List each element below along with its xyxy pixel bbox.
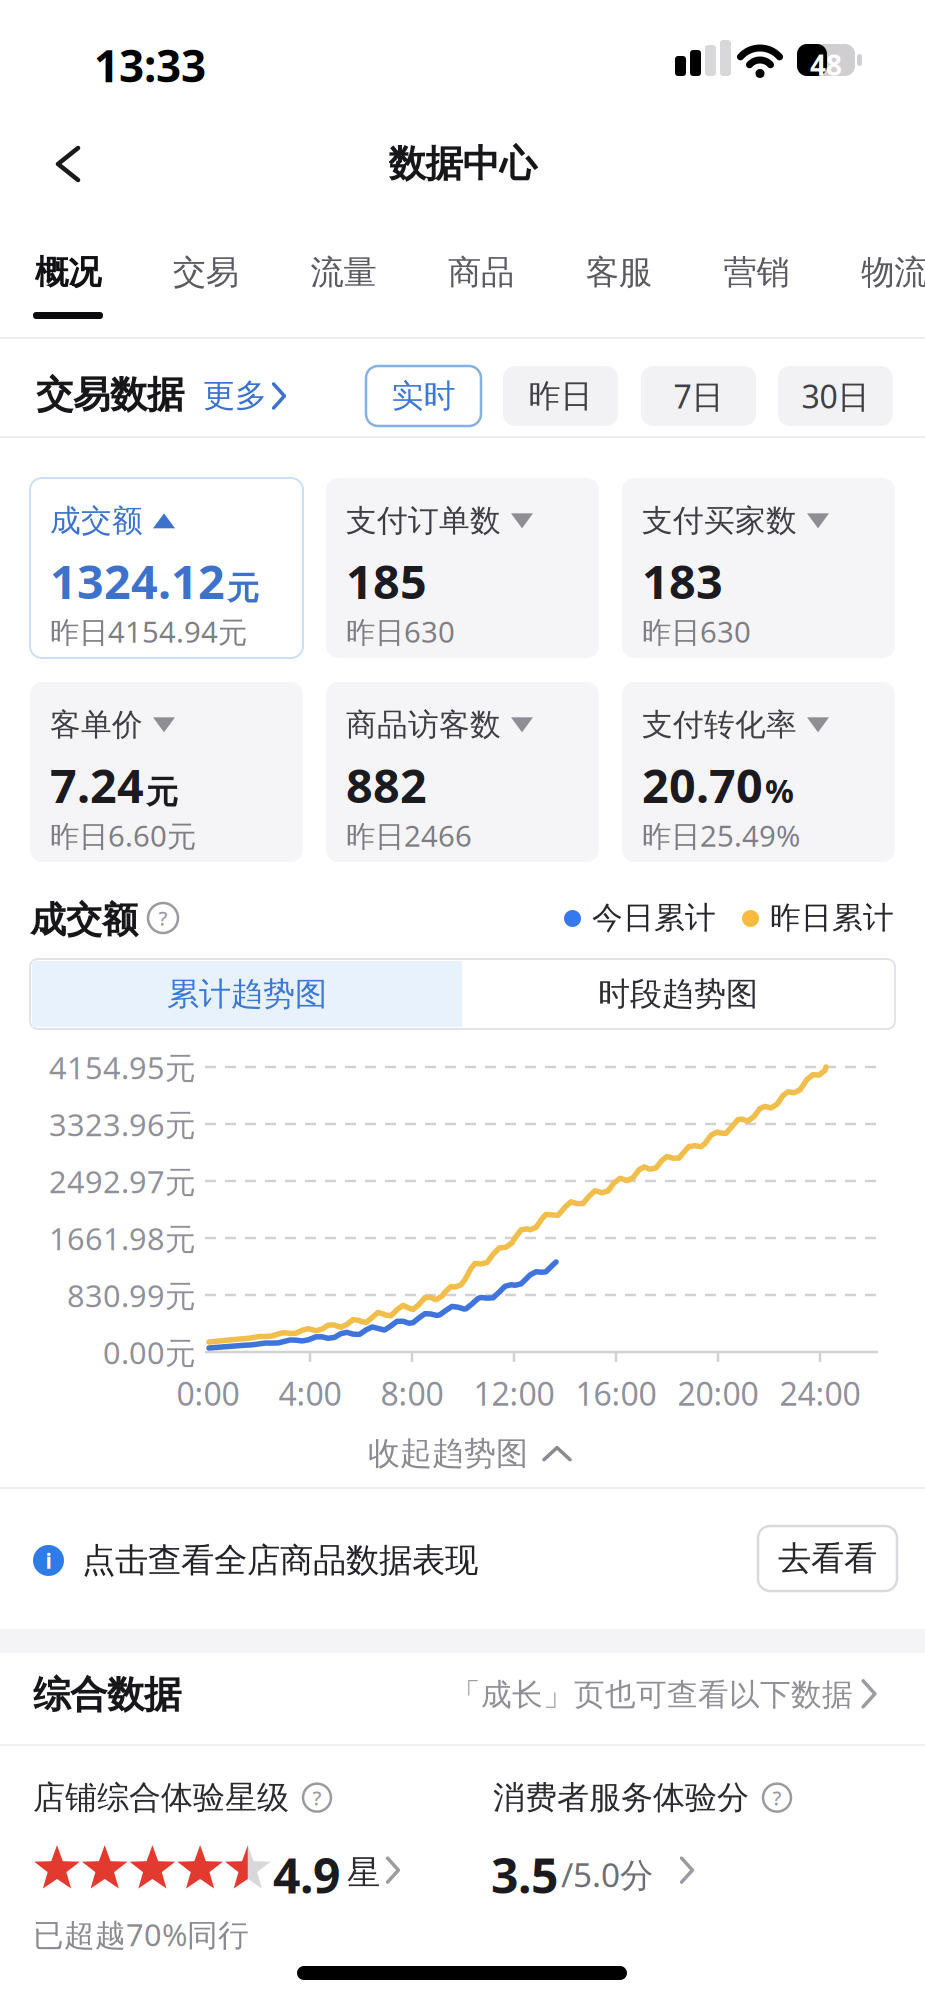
staticText: 4:00	[278, 1372, 341, 1414]
staticText: 12:00	[473, 1372, 554, 1414]
button[interactable]: 7日	[641, 366, 756, 426]
button[interactable]: 更多	[203, 376, 293, 416]
button[interactable]: i	[33, 1540, 478, 1581]
button[interactable]: 流量	[274, 252, 412, 293]
staticText: 物流	[861, 252, 925, 293]
staticText: 客服	[586, 252, 652, 293]
staticText: 点击查看全店商品数据表现	[82, 1540, 478, 1581]
button[interactable]: 收起趋势图	[368, 1434, 572, 1473]
button[interactable]: 累计趋势图	[32, 961, 462, 1027]
staticText: 1324.12	[50, 550, 225, 612]
staticText: 185	[346, 550, 427, 612]
staticText: 昨日25.49%	[642, 816, 800, 855]
button[interactable]: 时段趋势图	[463, 961, 893, 1027]
staticText: 成交额	[30, 898, 138, 942]
staticText: 更多	[203, 376, 267, 415]
staticText: %	[765, 769, 794, 812]
staticText: 昨日4154.94元	[50, 612, 247, 651]
staticText: 昨日6.60元	[50, 816, 196, 855]
button[interactable]: 去看看	[758, 1526, 897, 1591]
button[interactable]: 帮助	[763, 1784, 791, 1812]
staticText: 183	[642, 550, 723, 612]
staticText: 0.00元	[103, 1332, 196, 1373]
staticText: 30日	[801, 375, 869, 417]
button[interactable]: 4.9	[33, 1841, 443, 1901]
staticText: 1661.98元	[49, 1218, 196, 1259]
staticText: ?	[158, 905, 167, 931]
staticText: 16:00	[575, 1372, 656, 1414]
button[interactable]: 支付订单数	[326, 478, 599, 658]
button[interactable]: 3.5	[491, 1841, 701, 1901]
button[interactable]: 「成长」页也可查看以下数据	[450, 1676, 879, 1714]
staticText: 昨日630	[346, 612, 455, 651]
staticText: 已超越70%同行	[33, 1914, 249, 1955]
staticText: /5.0分	[561, 1852, 653, 1896]
button[interactable]: 支付转化率	[622, 682, 895, 862]
staticText: 13:33	[94, 36, 206, 94]
staticText: 882	[346, 754, 427, 816]
button[interactable]: 成交额	[30, 478, 303, 658]
button[interactable]: 返回	[56, 146, 82, 182]
staticText: 支付买家数	[642, 502, 797, 540]
staticText: 24:00	[779, 1372, 860, 1414]
staticText: i	[45, 1546, 51, 1575]
staticText: 48	[810, 46, 842, 83]
staticText: 830.99元	[67, 1275, 196, 1316]
staticText: 2492.97元	[49, 1161, 196, 1202]
button[interactable]: 商品访客数	[326, 682, 599, 862]
staticText: 星	[347, 1852, 380, 1893]
staticText: ?	[312, 1784, 321, 1811]
button[interactable]: 支付买家数	[622, 478, 895, 658]
staticText: 客单价	[50, 706, 143, 744]
staticText: 昨日630	[642, 612, 751, 651]
button[interactable]: 帮助	[148, 903, 178, 933]
staticText: 7.24	[50, 754, 144, 816]
staticText: 消费者服务体验分	[493, 1778, 749, 1817]
staticText: 昨日	[528, 376, 592, 416]
staticText: 成交额	[50, 502, 143, 540]
button[interactable]: 昨日	[503, 366, 618, 426]
staticText: 元	[227, 569, 259, 608]
button[interactable]: 30日	[778, 366, 893, 426]
staticText: 去看看	[778, 1538, 877, 1579]
staticText: 「成长」页也可查看以下数据	[450, 1676, 853, 1714]
staticText: 概况	[35, 252, 101, 293]
staticText: 实时	[391, 376, 455, 416]
staticText: 昨日累计	[770, 899, 894, 937]
staticText: 商品	[448, 252, 514, 293]
button[interactable]: 客单价	[30, 682, 303, 862]
staticText: 收起趋势图	[368, 1434, 528, 1473]
button[interactable]: 商品	[412, 252, 550, 293]
button[interactable]: 帮助	[303, 1784, 331, 1812]
button[interactable]: 概况	[0, 252, 137, 293]
staticText: 今日累计	[592, 899, 716, 937]
staticText: 0:00	[176, 1372, 239, 1414]
staticText: 商品访客数	[346, 706, 501, 744]
staticText: 7日	[673, 375, 723, 417]
button[interactable]: 客服	[550, 252, 688, 293]
staticText: 3.5	[491, 1843, 558, 1907]
staticText: 8:00	[380, 1372, 443, 1414]
staticText: 累计趋势图	[167, 974, 327, 1014]
staticText: 交易数据	[36, 372, 184, 418]
button[interactable]: 交易	[137, 252, 275, 293]
staticText: 20:00	[677, 1372, 758, 1414]
staticText: 3323.96元	[49, 1104, 196, 1145]
staticText: 支付转化率	[642, 706, 797, 744]
staticText: 营销	[723, 252, 789, 293]
staticText: 时段趋势图	[598, 974, 758, 1014]
button[interactable]: 实时	[366, 366, 481, 426]
staticText: 支付订单数	[346, 502, 501, 540]
staticText: 4154.95元	[49, 1047, 196, 1088]
staticText: 数据中心	[388, 141, 536, 187]
button[interactable]: 营销	[687, 252, 825, 293]
staticText: 4.9	[273, 1843, 340, 1907]
button[interactable]: 物流	[825, 252, 925, 293]
staticText: 元	[146, 773, 178, 812]
staticText: 店铺综合体验星级	[33, 1778, 289, 1817]
staticText: 综合数据	[33, 1672, 181, 1718]
staticText: ?	[772, 1784, 781, 1811]
staticText: 20.70	[642, 754, 763, 816]
staticText: 流量	[310, 252, 376, 293]
staticText: 昨日2466	[346, 816, 472, 855]
